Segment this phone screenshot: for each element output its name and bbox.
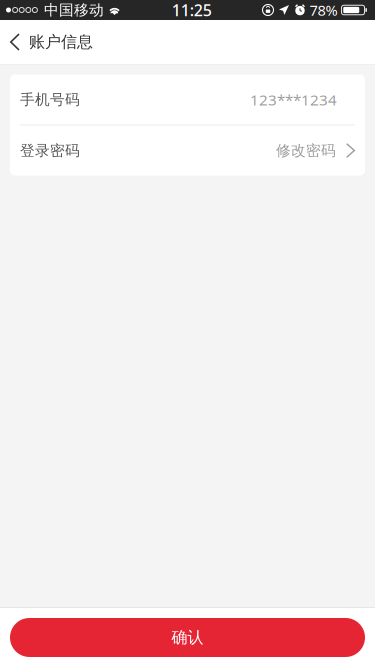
staticText: 78% [309, 0, 337, 20]
staticText: 中国移动 [44, 1, 104, 19]
button[interactable]: 返回 [0, 20, 29, 64]
button[interactable]: 手机号码 [10, 74, 365, 124]
staticText: 修改密码 [276, 141, 336, 160]
staticText: 确认 [171, 628, 203, 647]
staticText: 登录密码 [20, 141, 80, 159]
staticText: 123***1234 [250, 89, 337, 110]
staticText: 11:25 [172, 0, 212, 21]
button[interactable]: 登录密码 [10, 125, 365, 175]
button[interactable]: 确认 [10, 618, 365, 657]
staticText: 手机号码 [20, 90, 80, 108]
staticText: 账户信息 [29, 32, 93, 52]
